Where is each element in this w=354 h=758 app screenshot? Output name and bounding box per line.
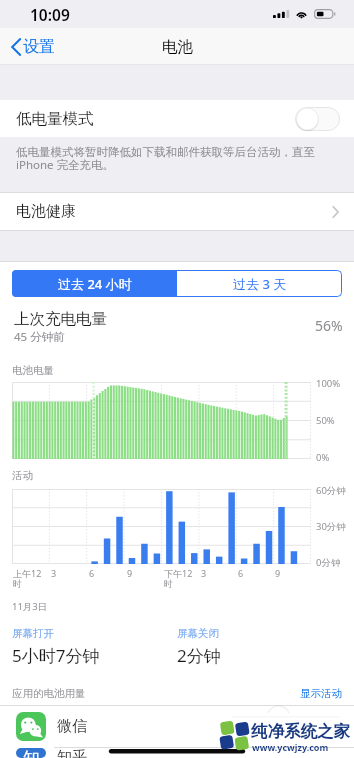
staticText: 屏幕打开 bbox=[12, 627, 54, 640]
button[interactable]: 电池健康 bbox=[0, 193, 354, 230]
staticText: 过去 3 天 bbox=[233, 275, 287, 293]
staticText: 知乎 bbox=[57, 748, 87, 758]
staticText: 低电量模式 bbox=[16, 109, 94, 129]
staticText: 2分钟 bbox=[177, 644, 221, 667]
staticText: 设置 bbox=[23, 37, 55, 57]
staticText: 0% bbox=[316, 451, 330, 464]
staticText: 60分钟 bbox=[316, 484, 346, 497]
button[interactable]: 微信 bbox=[0, 706, 354, 747]
staticText: 微信 bbox=[57, 717, 87, 736]
staticText: 过去 24 小时 bbox=[58, 275, 132, 293]
button[interactable]: 显示活动 bbox=[300, 687, 342, 700]
staticText: 6 bbox=[238, 567, 244, 579]
button[interactable]: 设置 bbox=[0, 32, 63, 62]
staticText: 3 bbox=[201, 567, 207, 579]
staticText: 纯净系统之家 bbox=[251, 721, 350, 742]
staticText: 6 bbox=[89, 567, 95, 579]
staticText: 11月3日 bbox=[12, 600, 48, 613]
button[interactable]: 知 bbox=[0, 748, 354, 758]
staticText: 0分钟 bbox=[316, 556, 341, 569]
staticText: www.ycwjzy.com bbox=[252, 741, 329, 753]
staticText: 45 分钟前 bbox=[14, 329, 65, 345]
staticText: 知 bbox=[23, 748, 40, 758]
staticText: 100% bbox=[316, 377, 341, 390]
staticText: 活动 bbox=[12, 469, 33, 482]
staticText: 上次充电电量 bbox=[14, 309, 107, 329]
button[interactable]: 低电量模式 bbox=[0, 100, 354, 137]
staticText: 屏幕关闭 bbox=[177, 627, 219, 640]
staticText: 上午12 时 bbox=[13, 567, 42, 588]
staticText: 50% bbox=[316, 414, 335, 427]
button[interactable]: 过去 24 小时 bbox=[12, 270, 177, 297]
staticText: 56% bbox=[315, 316, 343, 335]
staticText: 10:09 bbox=[30, 4, 70, 25]
button[interactable]: 低电量模式开关 bbox=[295, 107, 340, 131]
staticText: 30分钟 bbox=[316, 520, 346, 533]
staticText: 电池电量 bbox=[12, 364, 54, 377]
staticText: 低电量模式将暂时降低如下载和邮件获取等后台活动，直至 iPhone 完全充电。 bbox=[16, 145, 315, 173]
button[interactable]: 过去 3 天 bbox=[177, 270, 342, 297]
staticText: 3 bbox=[51, 567, 57, 579]
staticText: 5小时7分钟 bbox=[12, 644, 100, 667]
staticText: 9 bbox=[275, 567, 281, 579]
staticText: 应用的电池用量 bbox=[12, 687, 300, 700]
staticText: 电池 bbox=[162, 37, 193, 57]
staticText: 电池健康 bbox=[16, 202, 76, 221]
staticText: 下午12 时 bbox=[164, 567, 193, 588]
staticText: 9 bbox=[127, 567, 133, 579]
